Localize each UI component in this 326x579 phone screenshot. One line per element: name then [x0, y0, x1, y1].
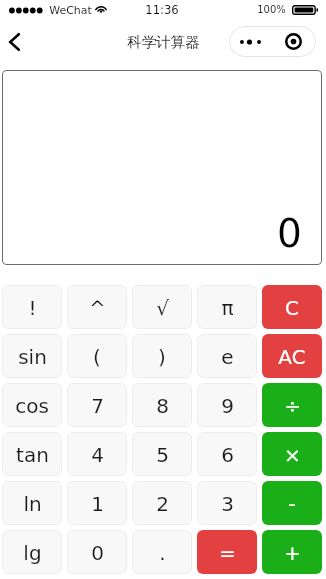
staticText: + [284, 541, 301, 564]
button[interactable]: ln [2, 481, 62, 525]
button[interactable]: C [262, 285, 322, 329]
button[interactable]: π [197, 285, 257, 329]
staticText: ( [93, 345, 101, 368]
button[interactable]: tan [2, 432, 62, 476]
staticText: 7 [91, 394, 104, 417]
button[interactable]: ) [132, 334, 192, 378]
staticText: cos [15, 394, 49, 417]
button[interactable]: More options [229, 26, 271, 57]
button[interactable]: Back [0, 24, 28, 60]
staticText: 3 [221, 492, 234, 515]
button[interactable]: Close mini program [271, 26, 316, 57]
staticText: C [285, 296, 299, 319]
button[interactable]: - [262, 481, 322, 525]
button[interactable]: 6 [197, 432, 257, 476]
button[interactable]: ^ [67, 285, 127, 329]
staticText: ÷ [284, 394, 301, 417]
staticText: lg [23, 541, 42, 564]
staticText: WeChat [49, 4, 92, 17]
staticText: 8 [156, 394, 169, 417]
button[interactable]: ÷ [262, 383, 322, 427]
button[interactable]: 4 [67, 432, 127, 476]
button[interactable]: ( [67, 334, 127, 378]
button[interactable]: . [132, 530, 192, 574]
staticText: sin [18, 345, 47, 368]
staticText: e [221, 345, 234, 368]
staticText: AC [278, 345, 306, 368]
staticText: - [288, 492, 296, 515]
button[interactable]: 2 [132, 481, 192, 525]
staticText: 1 [91, 492, 104, 515]
staticText: . [159, 541, 166, 564]
staticText: 0 [91, 541, 104, 564]
staticText: √ [156, 296, 169, 319]
staticText: ln [23, 492, 42, 515]
staticText: ! [28, 296, 37, 319]
button[interactable]: √ [132, 285, 192, 329]
staticText: 科学计算器 [127, 33, 200, 51]
staticText: = [219, 541, 236, 564]
staticText: π [221, 296, 234, 319]
staticText: ^ [89, 296, 106, 319]
staticText: 9 [221, 394, 234, 417]
staticText: ) [158, 345, 166, 368]
staticText: tan [16, 443, 49, 466]
button[interactable]: e [197, 334, 257, 378]
button[interactable]: 7 [67, 383, 127, 427]
button[interactable]: + [262, 530, 322, 574]
button[interactable]: = [197, 530, 257, 574]
staticText: 5 [156, 443, 169, 466]
staticText: 4 [91, 443, 104, 466]
button[interactable]: 5 [132, 432, 192, 476]
staticText: 0 [277, 211, 302, 256]
button[interactable]: sin [2, 334, 62, 378]
button[interactable]: × [262, 432, 322, 476]
button[interactable]: 8 [132, 383, 192, 427]
staticText: 2 [156, 492, 169, 515]
button[interactable]: 3 [197, 481, 257, 525]
button[interactable]: cos [2, 383, 62, 427]
button[interactable]: 0 [67, 530, 127, 574]
button[interactable]: lg [2, 530, 62, 574]
staticText: 11:36 [145, 3, 179, 17]
staticText: 100% [257, 4, 286, 16]
button[interactable]: AC [262, 334, 322, 378]
staticText: × [284, 443, 301, 466]
button[interactable]: ! [2, 285, 62, 329]
staticText: 6 [221, 443, 234, 466]
button[interactable]: 9 [197, 383, 257, 427]
button[interactable]: 1 [67, 481, 127, 525]
